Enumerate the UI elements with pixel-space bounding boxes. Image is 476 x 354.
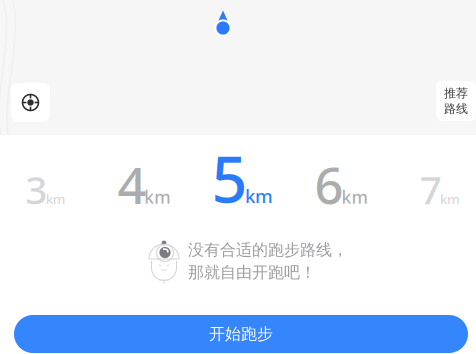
staticText: km bbox=[440, 190, 460, 208]
button[interactable]: 6 bbox=[293, 166, 391, 220]
staticText: 7 bbox=[420, 164, 442, 215]
staticText: 4 bbox=[117, 151, 146, 218]
button[interactable]: 4 bbox=[96, 166, 194, 220]
button[interactable]: 3 bbox=[0, 166, 96, 220]
staticText: 开始跑步 bbox=[209, 324, 273, 344]
staticText: 没有合适的跑步路线， bbox=[188, 240, 348, 260]
staticText: km bbox=[245, 183, 273, 208]
button[interactable]: 7 bbox=[391, 166, 476, 220]
staticText: 5 bbox=[211, 137, 247, 220]
button[interactable]: 5 bbox=[194, 166, 293, 220]
staticText: 路线 bbox=[444, 101, 468, 116]
staticText: km bbox=[144, 185, 170, 208]
button[interactable]: 推荐 bbox=[436, 81, 476, 121]
button[interactable]: 开始跑步 bbox=[14, 315, 468, 353]
staticText: 3 bbox=[25, 164, 47, 215]
staticText: 推荐 bbox=[444, 86, 468, 100]
staticText: 6 bbox=[315, 151, 344, 218]
button[interactable]: Locate me bbox=[11, 83, 50, 122]
staticText: km bbox=[341, 185, 367, 208]
staticText: km bbox=[46, 190, 66, 208]
staticText: 那就自由开跑吧！ bbox=[188, 263, 316, 282]
